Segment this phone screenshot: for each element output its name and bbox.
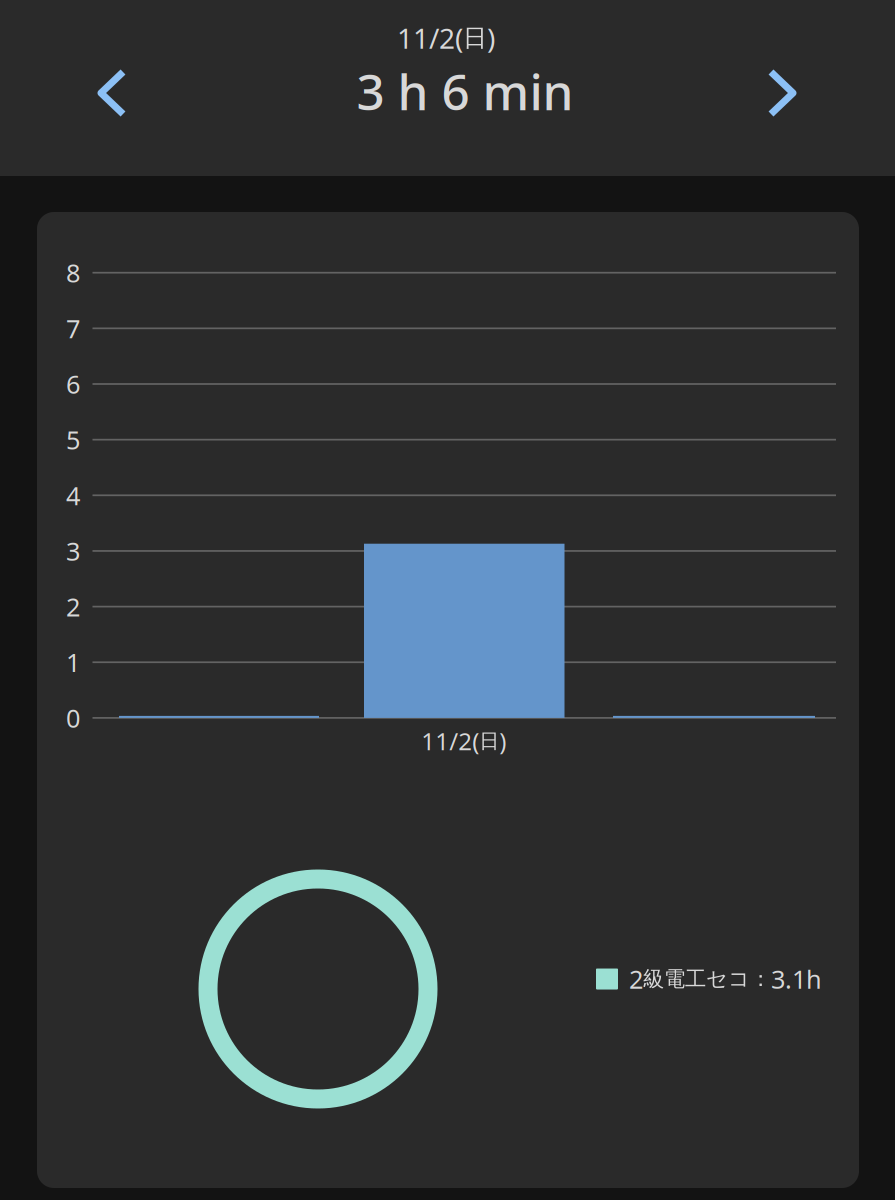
staticText: 7 xyxy=(66,311,80,345)
group: 11/2(日) xyxy=(421,725,506,757)
staticText: 11/2( xyxy=(421,725,479,757)
staticText: 日 xyxy=(479,729,499,753)
staticText: 8 xyxy=(66,256,80,289)
staticText: 2 xyxy=(66,590,80,623)
staticText: ) xyxy=(487,19,495,57)
group: 11/2(日) xyxy=(397,19,495,57)
staticText: 6 xyxy=(66,367,80,401)
staticText: 0 xyxy=(66,701,80,735)
group: 2級電工セコ：3.1h xyxy=(629,962,822,996)
staticText: 4 xyxy=(66,478,80,512)
staticText: 日 xyxy=(463,23,487,53)
staticText: ) xyxy=(499,725,506,757)
staticText: 3 h 6 min xyxy=(356,58,573,124)
staticText: 5 xyxy=(66,423,80,456)
staticText: 11/2( xyxy=(397,19,463,57)
staticText: 1 xyxy=(66,645,80,679)
staticText: 級電工セコ： xyxy=(643,966,771,992)
staticText: 2 xyxy=(629,962,643,996)
staticText: 3.1h xyxy=(771,962,822,996)
staticText: 3 xyxy=(66,534,80,568)
button[interactable]: Next day xyxy=(730,33,834,153)
button[interactable]: Previous day xyxy=(60,33,164,153)
